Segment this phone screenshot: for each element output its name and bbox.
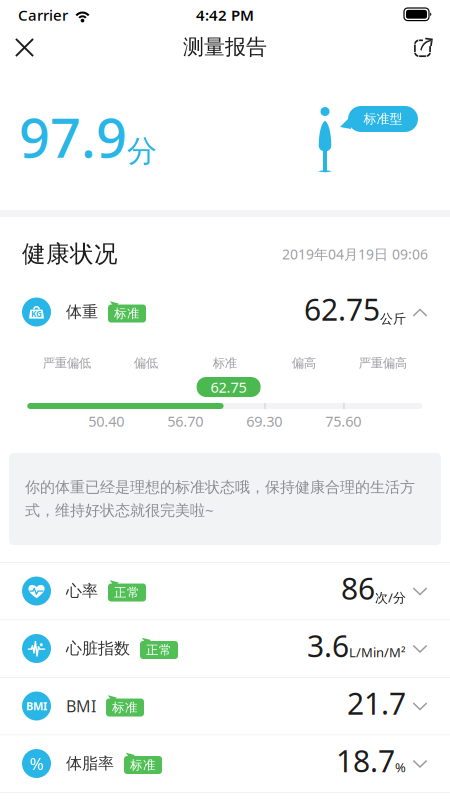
staticText: KG (31, 309, 42, 319)
staticText: 56.70 (167, 411, 203, 431)
staticText: 2019年04月19日 09:06 (282, 244, 428, 264)
staticText: BMI (26, 698, 47, 713)
staticText: 严重偏高 (359, 355, 407, 371)
button[interactable]: % (0, 735, 450, 792)
staticText: BMI (66, 695, 96, 717)
button[interactable]: 心率 (0, 563, 450, 619)
staticText: 心率 (66, 581, 98, 601)
staticText: 你的体重已经是理想的标准状态哦，保持健康合理的生活方式，维持好状态就很完美啦~ (25, 478, 415, 520)
staticText: 3.6L/Min/M² (307, 626, 406, 665)
staticText: 测量报告 (183, 34, 267, 60)
staticText: Carrier (18, 5, 68, 25)
staticText: 偏高 (292, 355, 316, 371)
staticText: 严重偏低 (43, 355, 91, 371)
staticText: 标准 (114, 306, 140, 321)
staticText: 4:42 PM (196, 5, 254, 25)
staticText: 97.9分 (19, 101, 157, 173)
button[interactable]: Close (0, 0, 45, 45)
button[interactable]: 心脏指数 (0, 620, 450, 677)
staticText: 62.75 (211, 377, 247, 397)
staticText: 75.60 (325, 411, 361, 431)
staticText: 62.75公斤 (304, 289, 406, 329)
staticText: 86次/分 (341, 568, 406, 608)
staticText: 健康状况 (22, 239, 118, 269)
button[interactable]: KG (0, 284, 450, 340)
staticText: % (29, 752, 43, 775)
staticText: 偏低 (134, 355, 158, 371)
staticText: 标准 (130, 757, 156, 773)
staticText: 50.40 (88, 411, 124, 431)
staticText: 正常 (114, 585, 140, 600)
staticText: 标准型 (363, 111, 402, 127)
staticText: 21.7 (347, 683, 406, 723)
staticText: 正常 (146, 642, 172, 658)
staticText: 标准 (112, 700, 138, 715)
staticText: 69.30 (246, 411, 282, 431)
staticText: 体脂率 (66, 753, 114, 774)
staticText: 心脏指数 (66, 638, 130, 659)
staticText: 18.7% (336, 741, 406, 780)
button[interactable]: BMI (0, 678, 450, 734)
staticText: 体重 (66, 302, 98, 322)
staticText: 标准 (213, 355, 237, 371)
button[interactable]: Share (0, 0, 45, 45)
